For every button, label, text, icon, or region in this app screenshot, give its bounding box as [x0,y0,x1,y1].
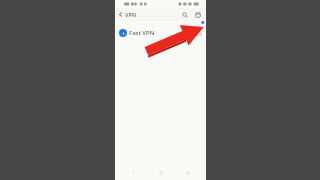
button[interactable]: Recent apps [178,165,198,180]
staticText: VPN [125,11,137,18]
button[interactable]: Back [115,8,125,21]
button[interactable]: Fast VPN [115,26,206,40]
staticText: Fast VPN [129,29,155,37]
button[interactable]: Toggle VPN [192,31,202,36]
button[interactable]: Home [151,165,171,180]
button[interactable]: Tabs [191,8,204,21]
button[interactable]: Search [179,8,191,21]
